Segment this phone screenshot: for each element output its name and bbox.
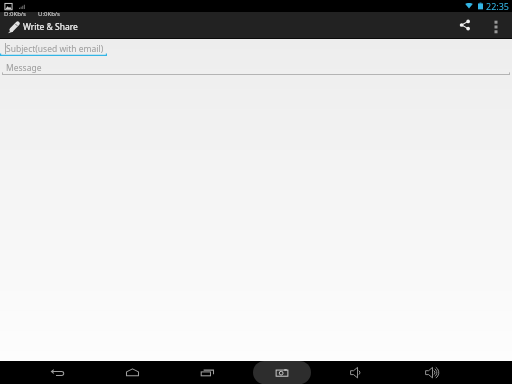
button[interactable]: Volume down [335, 361, 379, 384]
button[interactable]: Screenshot [253, 361, 311, 384]
staticText: U:0Kb/s [38, 10, 60, 18]
button[interactable]: Volume up [410, 361, 454, 384]
button[interactable]: Write & Share [0, 20, 84, 34]
button[interactable]: Recent apps [185, 361, 229, 384]
staticText: D:0Kb/s [4, 10, 26, 18]
button[interactable]: Message [2, 62, 510, 75]
button[interactable]: Home [110, 361, 154, 384]
button[interactable]: Share [452, 12, 478, 38]
staticText: Subject(used with email) [6, 43, 104, 55]
button[interactable]: Back [35, 361, 79, 384]
button[interactable]: Subject(used with email) [0, 43, 107, 56]
staticText: Write & Share [23, 21, 78, 33]
staticText: 22:35 [486, 0, 510, 12]
staticText: Message [6, 62, 42, 74]
button[interactable]: More options [483, 12, 509, 38]
